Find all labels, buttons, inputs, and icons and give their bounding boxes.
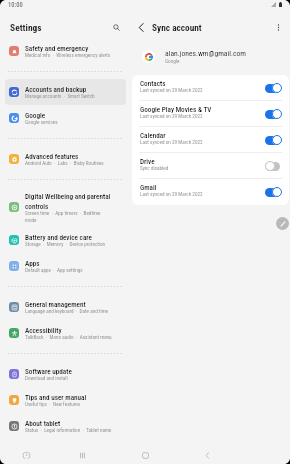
button[interactable]: General management [5, 294, 126, 320]
staticText: Last synced on 29 March 2022 [140, 87, 203, 93]
button[interactable]: Resize panes [276, 217, 289, 230]
button[interactable]: Contacts [132, 75, 289, 101]
button[interactable]: Home [136, 446, 154, 464]
button[interactable]: Battery and device care [5, 227, 126, 253]
button[interactable]: Drive [132, 153, 289, 179]
staticText: Safety and emergency [25, 44, 89, 52]
staticText: Sync account [152, 22, 202, 33]
button[interactable]: More options [272, 21, 285, 34]
staticText: Default apps · App settings [25, 267, 83, 273]
staticText: Settings [10, 22, 42, 33]
button[interactable]: Recents [73, 446, 91, 464]
staticText: Tips and user manual [25, 393, 87, 401]
button[interactable]: Search [110, 21, 123, 34]
staticText: Download and install [25, 375, 68, 381]
staticText: Battery and device care [25, 233, 92, 241]
button[interactable]: Advanced features [5, 146, 126, 172]
staticText: Screen time · App timers · Bedtime mode [25, 210, 113, 223]
staticText: Accessibility [25, 326, 62, 334]
staticText: Advanced features [25, 152, 79, 160]
button[interactable]: About tablet [5, 413, 126, 439]
staticText: Gmail [140, 183, 157, 191]
staticText: Language and keyboard · Date and time [25, 308, 109, 314]
staticText: Storage · Memory · Device protection [25, 241, 106, 247]
staticText: Google [165, 58, 180, 64]
staticText: Last synced on 29 March 2022 [140, 191, 203, 197]
button[interactable]: Accessibility [5, 320, 126, 346]
staticText: Sync disabled [140, 165, 169, 171]
staticText: Apps [25, 259, 40, 267]
staticText: Medical info · Wireless emergency alerts [25, 52, 111, 58]
staticText: Android Auto · Labs · Bixby Routines [25, 160, 104, 166]
button[interactable]: Back [198, 446, 216, 464]
button[interactable]: Google Play Movies & TV [132, 101, 289, 127]
staticText: Digital Wellbeing and parental controls [25, 192, 113, 210]
button[interactable]: Screenshot [17, 446, 35, 464]
button[interactable]: Apps [5, 253, 126, 279]
button[interactable]: Gmail [132, 179, 289, 205]
staticText: About tablet [25, 419, 61, 427]
staticText: Accounts and backup [25, 85, 87, 93]
staticText: Last synced on 29 March 2022 [140, 139, 203, 145]
staticText: Calendar [140, 131, 166, 139]
button[interactable]: Safety and emergency [5, 38, 126, 64]
button[interactable]: Calendar [132, 127, 289, 153]
staticText: General management [25, 300, 86, 308]
button[interactable]: alan.jones.wm@gmail.com [142, 38, 290, 75]
button[interactable]: Google [5, 105, 126, 131]
staticText: Status · Legal information · Tablet name [25, 427, 112, 433]
staticText: Last synced on 29 March 2022 [140, 113, 203, 119]
button[interactable]: Tips and user manual [5, 387, 126, 413]
button[interactable]: Back [135, 21, 148, 34]
button[interactable]: Digital Wellbeing and parental controls [5, 187, 126, 227]
staticText: Google [25, 111, 46, 119]
staticText: Contacts [140, 79, 166, 87]
staticText: Useful tips · New features [25, 401, 80, 407]
staticText: Software update [25, 367, 72, 375]
button[interactable]: Accounts and backup [5, 79, 126, 105]
staticText: TalkBack · Mono audio · Assistant menu [25, 334, 112, 340]
staticText: 10:00 [8, 1, 23, 9]
button[interactable]: Software update [5, 361, 126, 387]
staticText: Manage accounts · Smart Switch [25, 93, 95, 99]
staticText: alan.jones.wm@gmail.com [165, 49, 247, 58]
staticText: Google services [25, 119, 58, 125]
staticText: Drive [140, 157, 155, 165]
staticText: Google Play Movies & TV [140, 105, 212, 113]
